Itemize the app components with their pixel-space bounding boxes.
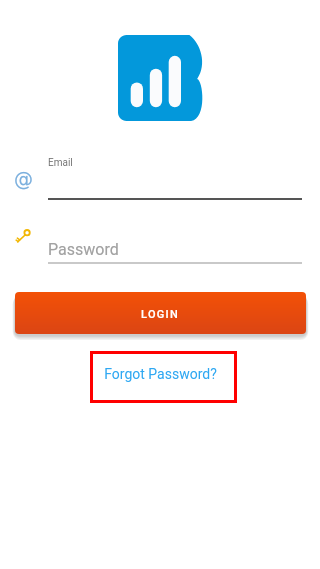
staticText: LOGIN bbox=[141, 308, 180, 321]
staticText: Email bbox=[48, 157, 73, 169]
button[interactable]: Forgot Password? bbox=[90, 351, 237, 403]
other: Email bbox=[14, 168, 33, 190]
other: Password bbox=[15, 228, 31, 244]
button[interactable]: LOGIN bbox=[15, 292, 306, 334]
staticText: @ bbox=[14, 168, 33, 190]
staticText: Password bbox=[48, 240, 119, 259]
staticText: Forgot Password? bbox=[104, 366, 217, 382]
